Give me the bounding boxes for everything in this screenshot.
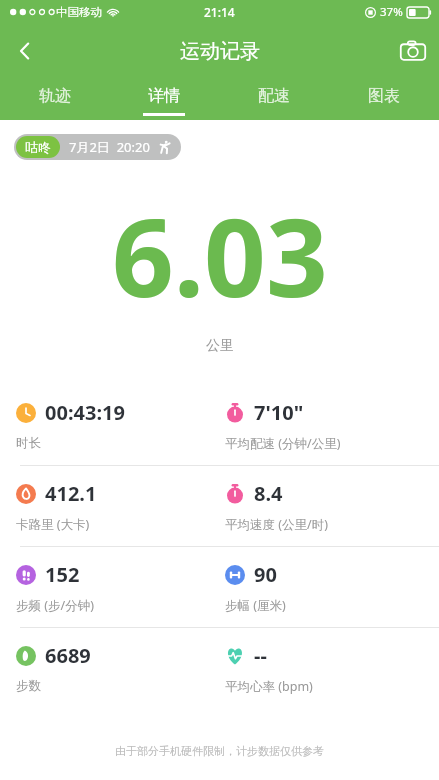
staticText: 7月2日 20:20 xyxy=(69,138,150,156)
staticText: 21:14 xyxy=(204,4,235,20)
staticText: 轨迹 xyxy=(39,86,71,106)
staticText: 90 xyxy=(254,561,277,588)
staticText: 公里 xyxy=(206,337,234,355)
button[interactable]: 详情 xyxy=(109,78,219,120)
staticText: 152 xyxy=(45,561,80,588)
button[interactable]: Back xyxy=(0,26,50,76)
staticText: 37% xyxy=(380,4,403,20)
staticText: 7'10" xyxy=(254,399,304,426)
button[interactable]: 152 xyxy=(16,547,219,627)
button[interactable]: 咕咚 xyxy=(14,134,181,160)
staticText: 图表 xyxy=(368,86,400,106)
staticText: -- xyxy=(254,642,267,669)
staticText: 咕咚 xyxy=(25,139,51,155)
staticText: 步数 xyxy=(16,678,41,694)
button[interactable]: 配速 xyxy=(219,78,329,120)
button[interactable]: 00:43:19 xyxy=(16,385,219,465)
button[interactable]: 6689 xyxy=(16,628,219,708)
staticText: 平均速度 (公里/时) xyxy=(225,516,328,533)
staticText: 平均配速 (分钟/公里) xyxy=(225,435,341,452)
staticText: 卡路里 (大卡) xyxy=(16,516,90,533)
staticText: 6689 xyxy=(45,642,91,669)
staticText: 8.4 xyxy=(254,480,283,507)
staticText: 由于部分手机硬件限制，计步数据仅供参考 xyxy=(0,744,439,758)
staticText: 详情 xyxy=(148,86,180,106)
button[interactable]: 8.4 xyxy=(225,466,439,546)
staticText: 步幅 (厘米) xyxy=(225,597,286,614)
button[interactable]: 图表 xyxy=(329,78,439,120)
button[interactable]: 轨迹 xyxy=(0,78,109,120)
button[interactable]: 90 xyxy=(225,547,439,627)
staticText: 412.1 xyxy=(45,480,97,507)
staticText: 步频 (步/分钟) xyxy=(16,597,94,614)
staticText: 平均心率 (bpm) xyxy=(225,678,313,695)
button[interactable]: -- xyxy=(225,628,439,708)
staticText: 中国移动 xyxy=(56,5,102,19)
staticText: 时长 xyxy=(16,435,41,451)
staticText: 配速 xyxy=(258,86,290,106)
button[interactable]: 7'10" xyxy=(225,385,439,465)
staticText: 运动记录 xyxy=(180,39,260,64)
button[interactable]: Camera xyxy=(387,25,439,77)
staticText: 6.03 xyxy=(112,182,328,329)
staticText: 00:43:19 xyxy=(45,399,125,426)
button[interactable]: 412.1 xyxy=(16,466,219,546)
